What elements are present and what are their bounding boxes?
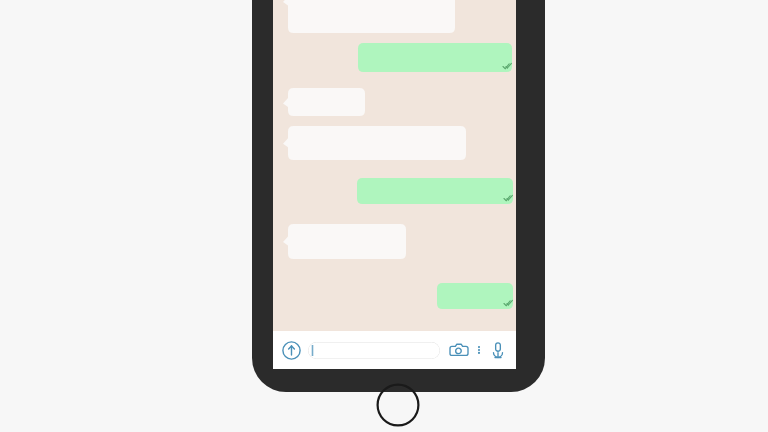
button[interactable] xyxy=(358,43,512,72)
button[interactable] xyxy=(308,342,440,359)
button[interactable] xyxy=(357,178,513,204)
button[interactable] xyxy=(437,283,513,309)
button[interactable]: Send xyxy=(280,339,302,361)
button[interactable]: Voice message xyxy=(487,339,509,361)
button[interactable]: More options xyxy=(473,344,485,356)
button[interactable]: Camera xyxy=(448,339,470,361)
button[interactable]: Home xyxy=(376,383,420,427)
